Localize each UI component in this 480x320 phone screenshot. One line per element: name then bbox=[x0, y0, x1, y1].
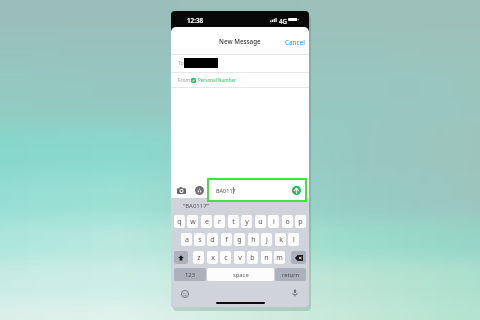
button[interactable]: v bbox=[234, 251, 245, 264]
staticText: New Message bbox=[219, 37, 261, 45]
staticText: q bbox=[177, 217, 182, 227]
staticText: p bbox=[298, 217, 303, 227]
button[interactable]: Backspace bbox=[291, 251, 306, 264]
button[interactable]: e bbox=[201, 215, 212, 228]
button[interactable]: o bbox=[282, 215, 293, 228]
button[interactable]: return bbox=[275, 268, 306, 281]
button[interactable]: m bbox=[274, 251, 285, 264]
staticText: b bbox=[250, 253, 255, 263]
button[interactable]: w bbox=[187, 215, 198, 228]
button[interactable]: k bbox=[275, 233, 286, 246]
staticText: e bbox=[205, 217, 209, 227]
staticText: l bbox=[293, 235, 295, 245]
button[interactable]: l bbox=[288, 233, 299, 246]
staticText: k bbox=[279, 235, 283, 245]
staticText: s bbox=[198, 235, 202, 245]
button[interactable]: y bbox=[241, 215, 252, 228]
staticText: Cancel bbox=[285, 38, 305, 47]
staticText: u bbox=[258, 217, 263, 227]
staticText: m bbox=[276, 253, 283, 263]
button[interactable]: Shift bbox=[174, 251, 188, 264]
staticText: v bbox=[238, 253, 242, 263]
staticText: f bbox=[225, 235, 228, 245]
button[interactable]: r bbox=[214, 215, 225, 228]
staticText: r bbox=[218, 217, 221, 227]
staticText: g bbox=[237, 235, 242, 245]
staticText: h bbox=[251, 235, 256, 245]
staticText: n bbox=[264, 253, 269, 263]
button[interactable]: Cancel bbox=[281, 34, 309, 51]
button[interactable]: Apps bbox=[195, 186, 204, 195]
button[interactable]: d bbox=[207, 233, 218, 246]
button[interactable]: BA0117 bbox=[210, 185, 304, 196]
button[interactable]: t bbox=[228, 215, 239, 228]
staticText: return bbox=[282, 271, 300, 279]
staticText: Personal Number bbox=[198, 77, 236, 83]
button[interactable]: 123 bbox=[174, 268, 206, 281]
staticText: t bbox=[232, 217, 235, 227]
staticText: w bbox=[190, 217, 196, 227]
staticText: 4G bbox=[279, 17, 288, 25]
staticText: space bbox=[233, 271, 249, 279]
staticText: o bbox=[285, 217, 290, 227]
button[interactable]: Dictation bbox=[291, 289, 299, 297]
button[interactable]: i bbox=[268, 215, 279, 228]
button[interactable]: s bbox=[194, 233, 205, 246]
staticText: a bbox=[185, 235, 189, 245]
button[interactable]: a bbox=[181, 233, 192, 246]
staticText: d bbox=[210, 235, 215, 245]
staticText: From: bbox=[178, 77, 192, 84]
button[interactable]: b bbox=[247, 251, 258, 264]
staticText: 12:38 bbox=[187, 16, 204, 25]
button[interactable]: u bbox=[255, 215, 266, 228]
staticText: “BA0117” bbox=[183, 202, 209, 210]
button[interactable]: j bbox=[261, 233, 272, 246]
button[interactable]: f bbox=[221, 233, 232, 246]
button[interactable]: c bbox=[220, 251, 231, 264]
button[interactable]: z bbox=[193, 251, 204, 264]
button[interactable]: Emoji bbox=[181, 290, 189, 298]
staticText: z bbox=[197, 253, 201, 263]
staticText: x bbox=[211, 253, 215, 263]
staticText: 123 bbox=[185, 271, 195, 279]
staticText: To: bbox=[178, 60, 185, 67]
staticText: c bbox=[224, 253, 228, 263]
button[interactable]: Camera bbox=[177, 187, 186, 194]
staticText: y bbox=[245, 217, 249, 227]
staticText: i bbox=[273, 217, 275, 227]
button[interactable]: x bbox=[207, 251, 218, 264]
button[interactable]: Send bbox=[292, 186, 301, 195]
button[interactable]: space bbox=[207, 268, 274, 281]
staticText: j bbox=[266, 235, 268, 245]
button[interactable]: g bbox=[234, 233, 245, 246]
staticText: BA0117 bbox=[216, 187, 236, 194]
button[interactable]: h bbox=[248, 233, 259, 246]
button[interactable]: n bbox=[261, 251, 272, 264]
button[interactable]: q bbox=[174, 215, 185, 228]
button[interactable]: p bbox=[295, 215, 306, 228]
